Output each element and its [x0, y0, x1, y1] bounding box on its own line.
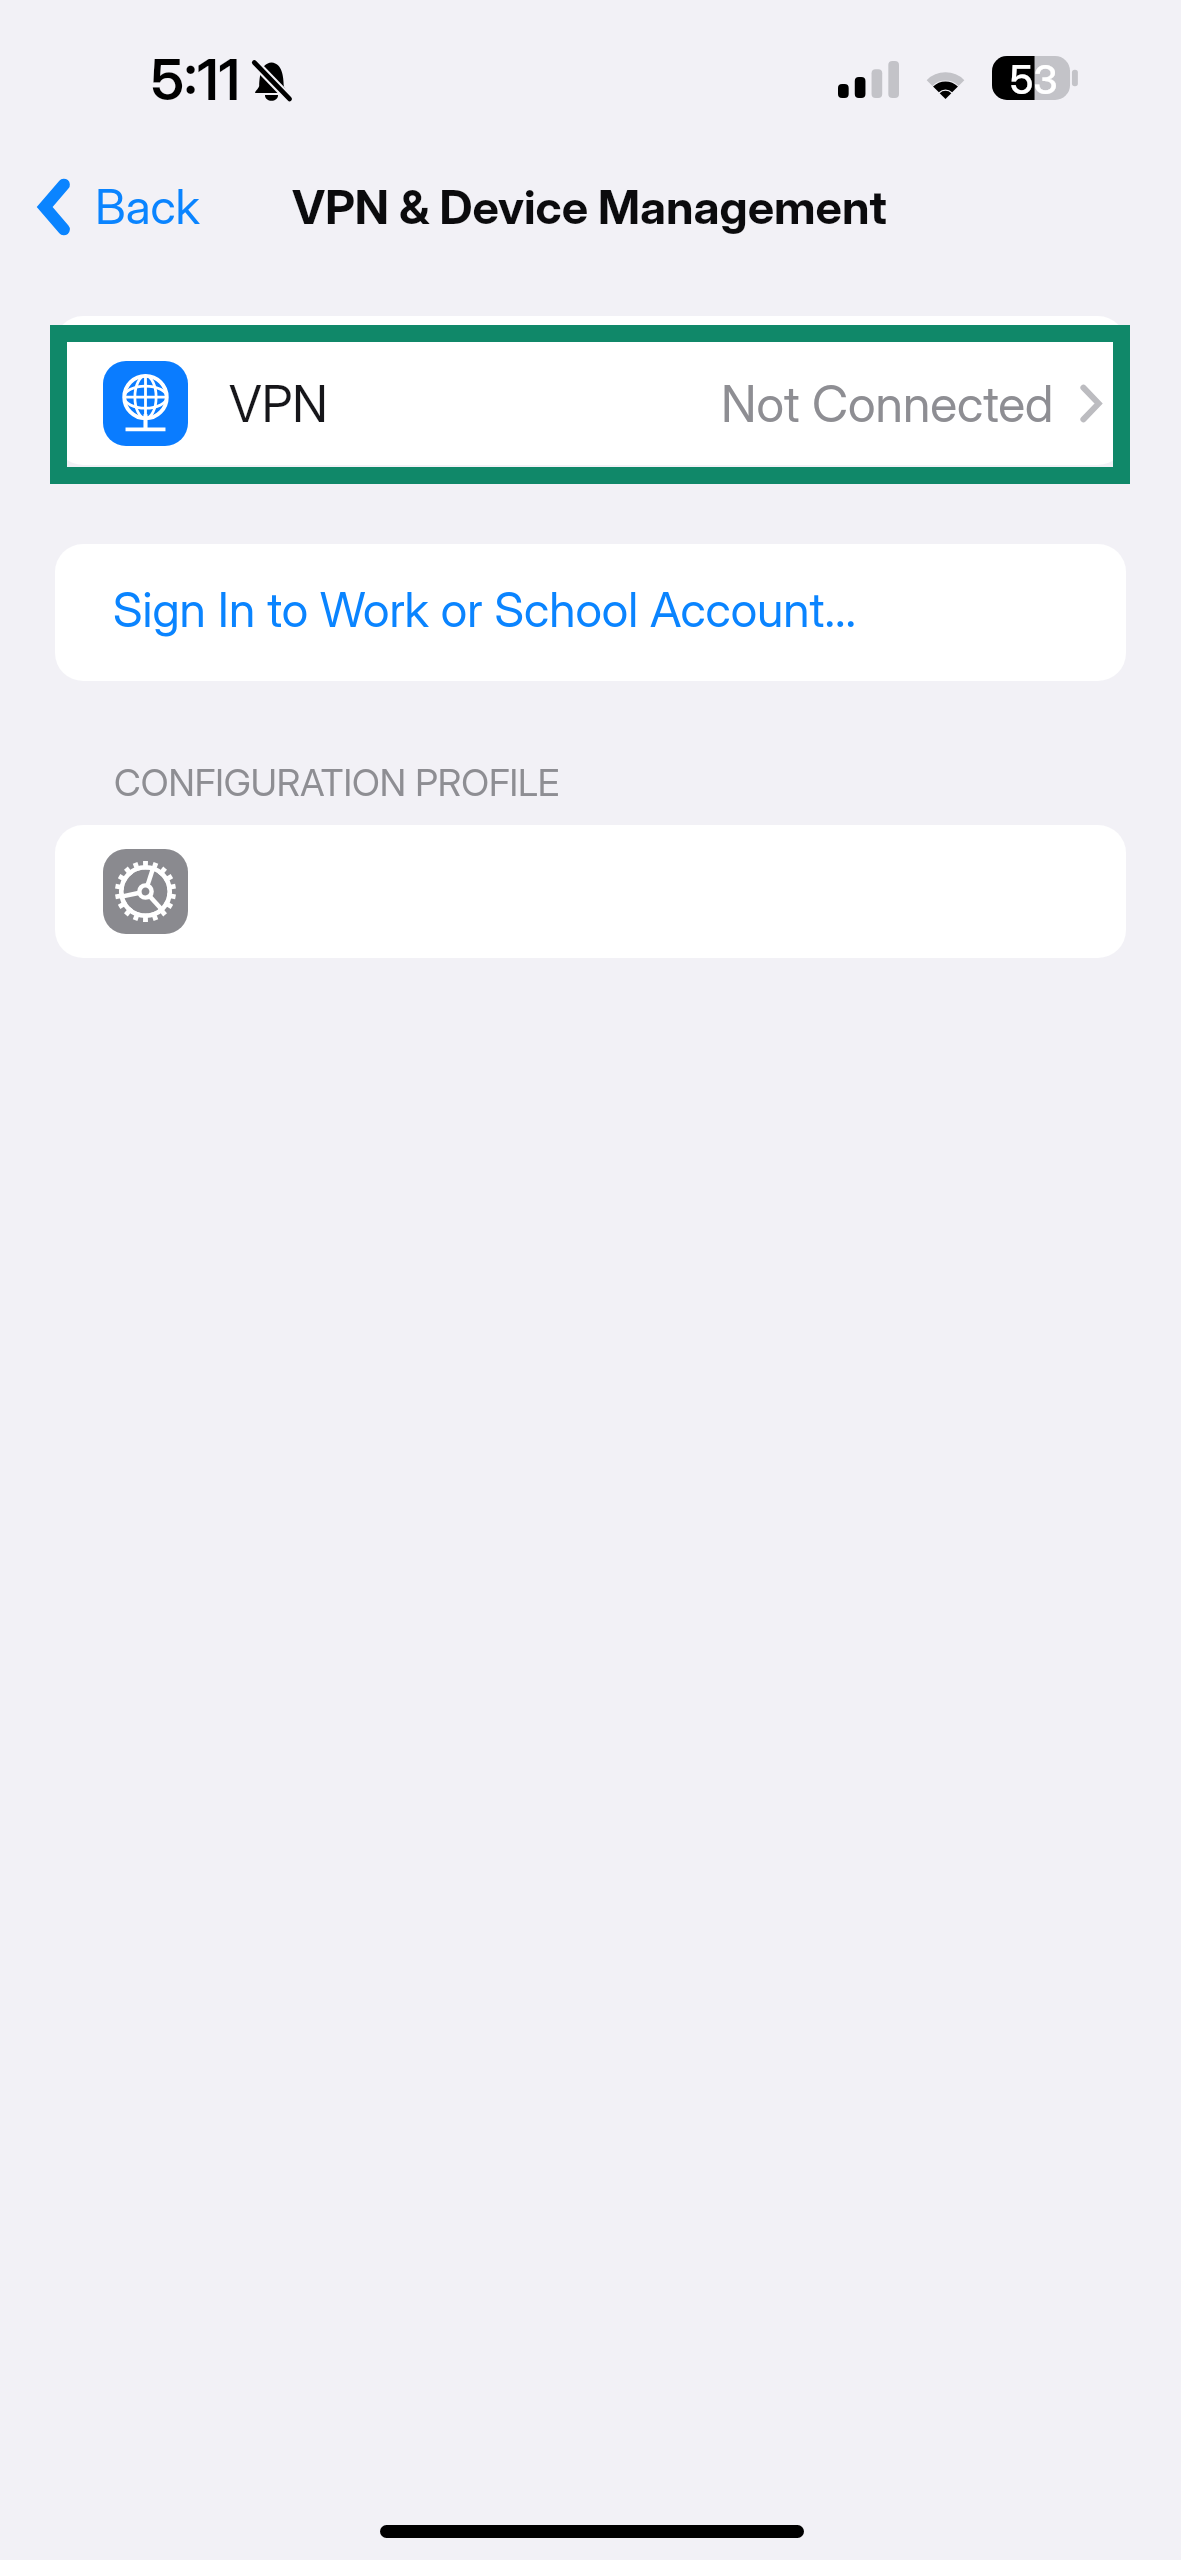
button[interactable]: Sign In to Work or School Account...	[55, 544, 1126, 681]
staticText: CONFIGURATION PROFILE	[114, 760, 560, 805]
button[interactable]: Back	[31, 161, 210, 251]
staticText: Not Connected	[721, 374, 1054, 434]
staticText: VPN & Device Management	[292, 178, 887, 235]
other: Wi-Fi connected	[919, 58, 972, 99]
staticText: 53	[1010, 55, 1058, 99]
staticText: VPN	[229, 374, 328, 434]
button[interactable]: Configuration profile	[55, 825, 1126, 958]
other: Cellular signal strength	[838, 61, 899, 98]
button[interactable]: VPN	[55, 316, 1126, 465]
staticText: Back	[95, 177, 200, 235]
other: Silent mode on	[251, 58, 292, 103]
staticText: Sign In to Work or School Account...	[113, 580, 857, 638]
staticText: 5:11	[151, 46, 240, 114]
other: Battery 53 percent	[992, 56, 1079, 100]
